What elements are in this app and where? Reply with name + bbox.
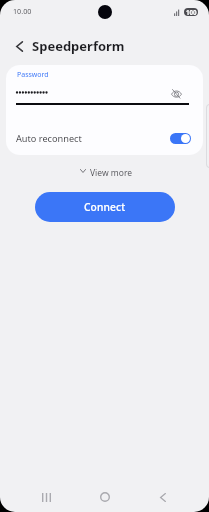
staticText: 10.00 <box>13 6 32 16</box>
button[interactable]: Show password <box>165 82 187 104</box>
staticText: 100 <box>186 8 197 16</box>
button[interactable]: View more <box>75 164 135 180</box>
button[interactable]: Auto reconnect <box>6 123 203 153</box>
button[interactable]: Back <box>3 30 35 62</box>
button[interactable]: Back <box>134 482 192 512</box>
staticText: View more <box>90 167 133 179</box>
staticText: Connect <box>84 200 126 214</box>
staticText: Password <box>17 70 49 80</box>
button[interactable]: Home <box>76 482 134 512</box>
staticText: Speedperform <box>32 37 125 55</box>
button[interactable]: Connect <box>35 192 175 222</box>
staticText: Auto reconnect <box>16 132 170 145</box>
button[interactable]: Recents <box>17 482 76 512</box>
